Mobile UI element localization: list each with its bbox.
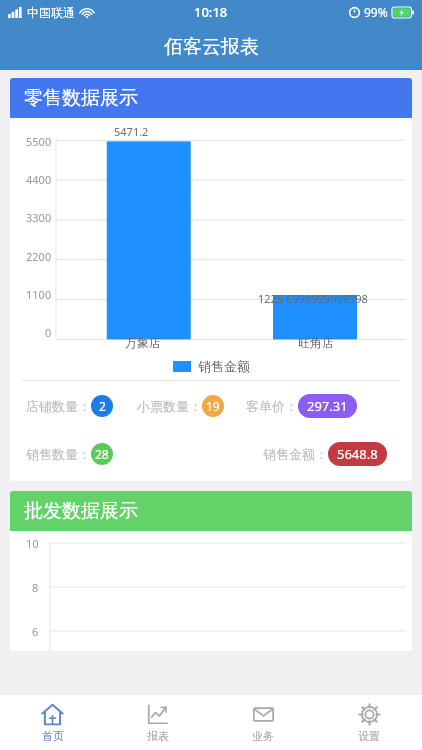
button[interactable]: 设置	[316, 695, 422, 750]
staticText: 10	[26, 536, 39, 551]
staticText: 销售金额：	[263, 446, 328, 462]
staticText: 首页	[42, 729, 64, 743]
staticText: 10:18	[194, 3, 228, 21]
staticText: 报表	[147, 729, 169, 743]
staticText: 8	[32, 580, 39, 595]
staticText: 5648.8	[337, 445, 378, 463]
staticText: 批发数据展示	[24, 499, 138, 523]
staticText: 6	[32, 624, 39, 639]
staticText: 2	[99, 398, 106, 414]
staticText: 4400	[26, 172, 52, 187]
button[interactable]: 业务	[210, 695, 316, 750]
staticText: 业务	[252, 729, 274, 743]
staticText: 销售金额	[198, 358, 250, 374]
staticText: 客单价：	[246, 398, 298, 414]
staticText: 297.31	[307, 397, 348, 415]
staticText: 28	[95, 446, 109, 462]
staticText: 2200	[26, 249, 52, 264]
staticText: 设置	[358, 729, 380, 743]
staticText: 99%	[364, 4, 388, 20]
staticText: 万象店	[125, 335, 161, 350]
staticText: 3300	[26, 210, 52, 225]
staticText: 5471.2	[114, 124, 149, 139]
staticText: 19	[206, 398, 220, 414]
button[interactable]: 报表	[105, 695, 210, 750]
staticText: 0	[45, 325, 52, 340]
staticText: 零售数据展示	[24, 86, 138, 110]
staticText: 中国联通	[27, 5, 75, 20]
staticText: 小票数量：	[137, 398, 202, 414]
button[interactable]: 首页	[0, 695, 105, 750]
staticText: 1225.6999999999998	[258, 291, 368, 306]
staticText: 佰客云报表	[164, 35, 259, 59]
staticText: 旺角店	[298, 335, 334, 350]
staticText: 店铺数量：	[26, 398, 91, 414]
staticText: 1100	[26, 287, 52, 302]
staticText: 销售数量：	[26, 446, 91, 462]
staticText: 5500	[26, 134, 52, 149]
